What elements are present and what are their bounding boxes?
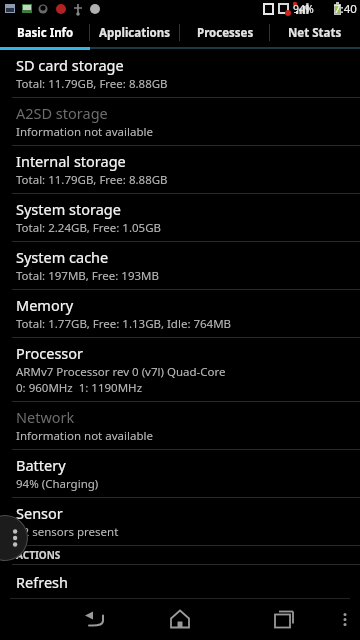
staticText: Information not available — [16, 428, 153, 444]
button[interactable]: A2SD storage — [0, 98, 360, 145]
staticText: ACTIONS — [16, 548, 61, 562]
staticText: Battery — [16, 455, 66, 475]
button[interactable]: Drag handle — [0, 515, 28, 561]
button[interactable]: Applications — [90, 18, 180, 47]
button[interactable]: Home — [140, 599, 220, 640]
button[interactable]: Memory — [0, 290, 360, 337]
button[interactable]: Network — [0, 402, 360, 449]
staticText: Network — [16, 407, 75, 427]
button[interactable]: Refresh — [0, 565, 360, 598]
button[interactable]: Processor — [0, 338, 360, 401]
staticText: Processes — [197, 25, 254, 41]
staticText: Total: 2.24GB, Free: 1.05GB — [16, 220, 162, 236]
staticText: 94% (Charging) — [16, 476, 99, 492]
staticText: SD card storage — [16, 55, 124, 75]
button[interactable]: SD card storage — [0, 50, 360, 97]
staticText: Internal storage — [16, 151, 126, 171]
button[interactable]: System storage — [0, 194, 360, 241]
staticText: System storage — [16, 199, 121, 219]
button[interactable]: System cache — [0, 242, 360, 289]
staticText: Basic Info — [17, 25, 74, 41]
staticText: 7:40 — [334, 1, 357, 17]
button[interactable]: Basic Info — [0, 18, 90, 47]
button[interactable]: Back — [40, 599, 150, 640]
staticText: ARMv7 Processor rev 0 (v7l) Quad-Core — [16, 364, 226, 380]
staticText: Information not available — [16, 124, 153, 140]
staticText: Total: 197MB, Free: 193MB — [16, 268, 159, 284]
staticText: Total: 11.79GB, Free: 8.88GB — [16, 76, 168, 92]
button[interactable]: Net Stats — [270, 18, 360, 47]
staticText: Processor — [16, 343, 84, 363]
button[interactable]: Recents — [244, 599, 324, 640]
staticText: 22 sensors present — [16, 524, 119, 540]
staticText: 0: 960MHz 1: 1190MHz — [16, 380, 143, 396]
staticText: Total: 1.77GB, Free: 1.13GB, Idle: 764MB — [16, 316, 232, 332]
button[interactable]: Battery — [0, 450, 360, 497]
staticText: Total: 11.79GB, Free: 8.88GB — [16, 172, 168, 188]
button[interactable]: Menu — [330, 599, 360, 640]
button[interactable]: Processes — [180, 18, 270, 47]
staticText: Net Stats — [288, 25, 342, 41]
staticText: Refresh — [16, 572, 68, 592]
staticText: System cache — [16, 247, 109, 267]
button[interactable]: Internal storage — [0, 146, 360, 193]
button[interactable]: Sensor — [0, 498, 360, 545]
staticText: Memory — [16, 295, 74, 315]
staticText: Sensor — [16, 503, 63, 523]
staticText: Applications — [99, 25, 171, 41]
staticText: A2SD storage — [16, 103, 108, 123]
staticText: 94% — [293, 2, 314, 16]
